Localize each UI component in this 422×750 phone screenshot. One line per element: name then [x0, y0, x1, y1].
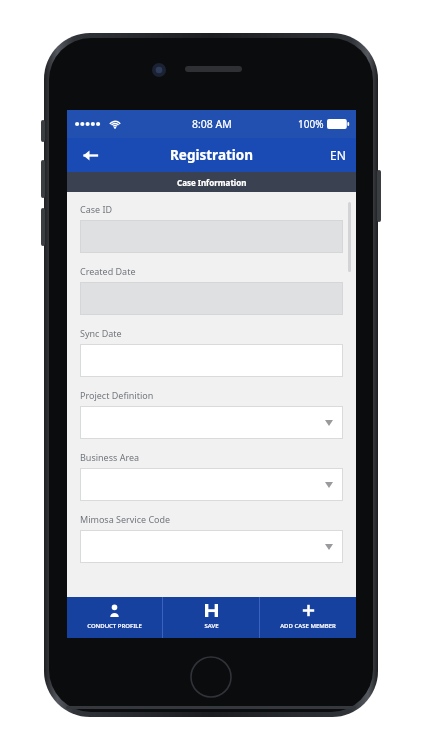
staticText: Sync Date [80, 327, 122, 339]
staticText: Business Area [80, 451, 140, 463]
staticText: Project Definition [80, 389, 154, 401]
button[interactable]: EN [330, 147, 346, 163]
button[interactable] [80, 468, 343, 501]
button[interactable] [80, 530, 343, 563]
staticText: Case Information [177, 177, 247, 188]
button[interactable] [80, 344, 343, 377]
button[interactable]: ADD CASE MEMBER [260, 597, 356, 638]
button[interactable]: SAVE [163, 597, 259, 638]
staticText: 100% [298, 117, 324, 131]
button[interactable] [80, 406, 343, 439]
staticText: 8:08 AM [192, 117, 232, 131]
staticText: Case ID [80, 203, 113, 215]
staticText: ADD CASE MEMBER [280, 622, 336, 630]
staticText: Registration [170, 146, 254, 164]
staticText: EN [330, 147, 346, 163]
button[interactable]: CONDUCT PROFILE [67, 597, 162, 638]
button[interactable]: Back [75, 140, 105, 170]
staticText: Created Date [80, 265, 136, 277]
staticText: SAVE [204, 622, 219, 630]
staticText: CONDUCT PROFILE [87, 622, 142, 630]
staticText: Mimosa Service Code [80, 513, 171, 525]
